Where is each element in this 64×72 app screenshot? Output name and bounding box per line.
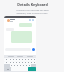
button[interactable] — [21, 58, 24, 61]
button[interactable] — [13, 64, 16, 67]
button[interactable] — [19, 64, 22, 67]
button[interactable]: Send — [32, 48, 35, 51]
button[interactable] — [16, 64, 19, 67]
button[interactable] — [28, 64, 31, 67]
button[interactable] — [24, 61, 27, 64]
button[interactable] — [15, 61, 18, 64]
button[interactable]: Send message — [28, 67, 36, 71]
button[interactable] — [22, 64, 25, 67]
staticText: Details Keyboard — [17, 2, 48, 7]
button[interactable] — [33, 61, 36, 64]
button[interactable] — [33, 58, 36, 61]
button[interactable] — [30, 61, 33, 64]
button[interactable] — [24, 58, 27, 61]
button[interactable] — [18, 58, 21, 61]
staticText: Whether your message has been — [16, 9, 49, 12]
button[interactable] — [4, 58, 8, 61]
button[interactable] — [8, 58, 12, 61]
button[interactable]: Symbols — [4, 67, 11, 71]
button[interactable] — [12, 58, 15, 61]
button[interactable] — [12, 61, 15, 64]
button[interactable] — [27, 61, 30, 64]
button[interactable]: Call — [32, 19, 34, 21]
staticText: delivered, read or seen by them — [16, 12, 48, 15]
button[interactable] — [4, 61, 8, 64]
button[interactable] — [8, 61, 12, 64]
button[interactable] — [18, 61, 21, 64]
button[interactable]: Video call — [29, 19, 31, 21]
button[interactable] — [25, 64, 28, 67]
button[interactable] — [21, 61, 24, 64]
button[interactable] — [10, 64, 13, 67]
button[interactable] — [27, 58, 30, 61]
button[interactable] — [30, 58, 33, 61]
button[interactable] — [15, 58, 18, 61]
